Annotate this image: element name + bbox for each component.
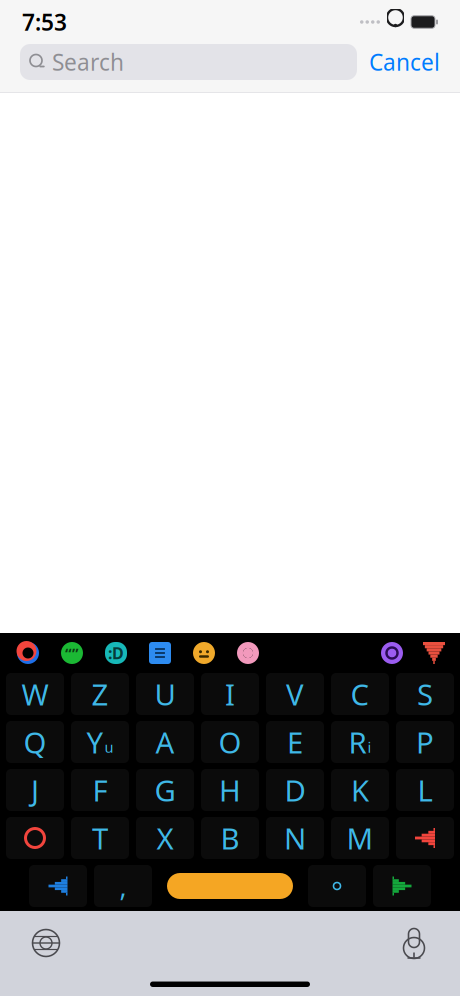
staticText: Q [23, 722, 46, 761]
staticText: :D [108, 642, 124, 664]
staticText: O [218, 722, 241, 761]
button[interactable]: P [396, 721, 454, 763]
staticText: A [155, 722, 174, 761]
button[interactable]: N [266, 817, 324, 859]
staticText: P [416, 722, 434, 761]
staticText: Search [52, 47, 124, 77]
button[interactable]: L [396, 769, 454, 811]
button[interactable]: Settings [370, 637, 414, 669]
staticText: H [219, 770, 241, 809]
button[interactable] [29, 865, 87, 907]
button[interactable]: W [6, 673, 64, 715]
button[interactable]: I [201, 673, 259, 715]
button[interactable]: J [6, 769, 64, 811]
button[interactable]: Clipboard [138, 637, 182, 669]
button[interactable]: X [136, 817, 194, 859]
button[interactable]: M [331, 817, 389, 859]
staticText: 7:53 [22, 7, 67, 37]
staticText: I [225, 674, 235, 713]
staticText: Cancel [369, 47, 440, 77]
staticText: E [287, 722, 303, 761]
button[interactable]: F [71, 769, 129, 811]
button[interactable]: A [136, 721, 194, 763]
button[interactable]: H [201, 769, 259, 811]
button[interactable]: Y [71, 721, 129, 763]
button[interactable]: Emoji [182, 637, 226, 669]
staticText: i [367, 737, 371, 757]
button[interactable]: Kaomoji [94, 637, 138, 669]
button[interactable]: Q [6, 721, 64, 763]
button[interactable]: Quotes [50, 637, 94, 669]
button[interactable] [373, 865, 431, 907]
button[interactable]: D [266, 769, 324, 811]
button[interactable]: Dismiss keyboard [414, 637, 454, 669]
staticText: X [156, 818, 173, 857]
button[interactable]: , [94, 865, 152, 907]
staticText: R [348, 722, 366, 761]
button[interactable]: K [331, 769, 389, 811]
staticText: T [92, 818, 108, 857]
staticText: K [351, 770, 369, 809]
button[interactable] [396, 817, 454, 859]
staticText: U [154, 674, 175, 713]
staticText: u [104, 737, 113, 757]
staticText: D [284, 770, 305, 809]
button[interactable] [308, 865, 366, 907]
button[interactable]: Dictate [390, 919, 438, 967]
staticText: W [21, 674, 48, 713]
button[interactable]: E [266, 721, 324, 763]
staticText: S [417, 674, 433, 713]
button[interactable]: C [331, 673, 389, 715]
staticText: C [350, 674, 369, 713]
button[interactable] [6, 817, 64, 859]
staticText: Z [91, 674, 108, 713]
button[interactable]: Stickers [226, 637, 270, 669]
button[interactable]: Space [159, 865, 301, 907]
button[interactable]: Search [20, 44, 357, 80]
button[interactable]: S [396, 673, 454, 715]
button[interactable]: Z [71, 673, 129, 715]
button[interactable]: R [331, 721, 389, 763]
staticText: , [119, 868, 126, 904]
button[interactable]: Cancel [369, 47, 440, 77]
button[interactable]: Next keyboard [22, 919, 70, 967]
button[interactable]: U [136, 673, 194, 715]
staticText: N [284, 818, 306, 857]
button[interactable]: G [136, 769, 194, 811]
staticText: J [31, 770, 39, 809]
staticText: M [346, 818, 373, 857]
button[interactable]: O [201, 721, 259, 763]
staticText: B [220, 818, 239, 857]
button[interactable]: T [71, 817, 129, 859]
staticText: G [154, 770, 175, 809]
button[interactable]: V [266, 673, 324, 715]
button[interactable]: Recents [6, 637, 50, 669]
staticText: V [286, 674, 304, 713]
staticText: F [92, 770, 107, 809]
button[interactable]: B [201, 817, 259, 859]
staticText: Y [86, 722, 103, 761]
staticText: L [417, 770, 432, 809]
staticText: “” [65, 643, 79, 663]
